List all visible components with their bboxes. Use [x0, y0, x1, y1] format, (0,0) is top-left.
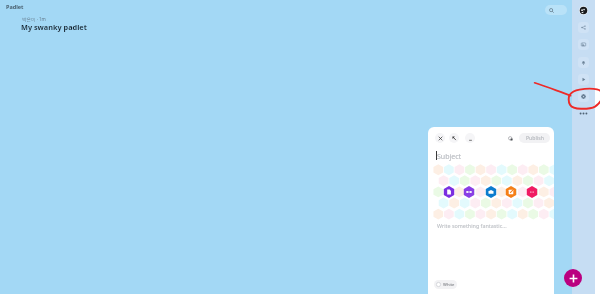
staticText: Padlet [6, 3, 24, 10]
button[interactable]: Slideshow [578, 74, 589, 85]
button[interactable]: Publish [519, 133, 550, 143]
button[interactable]: Settings [578, 91, 589, 102]
button[interactable]: More options [527, 186, 537, 198]
button[interactable]: Draw [506, 186, 516, 198]
button[interactable]: Notifications [578, 57, 589, 68]
button[interactable]: Minimize [465, 133, 475, 143]
button[interactable]: Privacy [507, 135, 514, 142]
button[interactable]: Add link [464, 186, 474, 198]
button[interactable]: Close [435, 133, 445, 143]
staticText: Subject [437, 152, 462, 162]
staticText: 박은미 · 1m [22, 16, 46, 22]
staticText: Publish [526, 135, 544, 142]
button[interactable]: More options [578, 110, 589, 117]
button[interactable]: Expand [449, 133, 459, 143]
button[interactable]: Profile [579, 6, 588, 15]
button[interactable]: Share [578, 22, 589, 33]
staticText: My swanky padlet [21, 22, 87, 32]
button[interactable]: Search [545, 5, 567, 15]
staticText: White [443, 282, 455, 288]
button[interactable]: Gallery [578, 39, 589, 50]
button[interactable]: Take photo [486, 186, 496, 198]
button[interactable]: White [436, 280, 455, 289]
button[interactable]: Add post [564, 269, 582, 287]
staticText: Write something fantastic... [437, 222, 507, 229]
button[interactable]: Attach file [444, 186, 454, 198]
